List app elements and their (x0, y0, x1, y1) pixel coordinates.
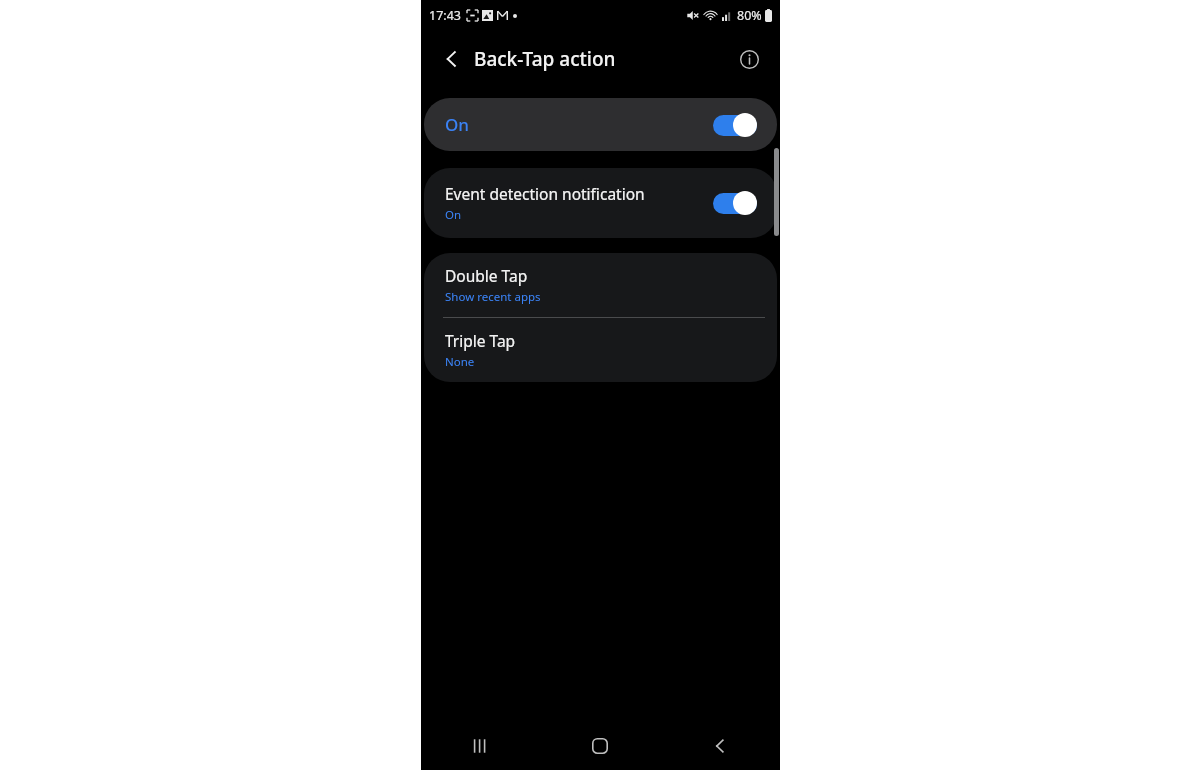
staticText: Show recent apps (445, 289, 541, 305)
button[interactable]: Event detection notification (424, 168, 777, 238)
button[interactable]: Toggle, on (713, 112, 759, 138)
button[interactable]: On (424, 98, 777, 151)
staticText: On (445, 207, 462, 223)
button[interactable]: Triple Tap (424, 318, 777, 382)
staticText: 17:43 (429, 7, 461, 24)
staticText: Event detection notification (445, 183, 645, 204)
button[interactable]: Home (540, 722, 660, 770)
staticText: None (445, 354, 475, 370)
staticText: Triple Tap (445, 330, 516, 351)
staticText: On (445, 113, 469, 136)
staticText: Back-Tap action (474, 46, 616, 72)
button[interactable]: About this feature (732, 42, 766, 76)
button[interactable]: Recent apps (421, 722, 540, 770)
button[interactable]: Toggle, on (713, 190, 759, 216)
button[interactable]: Navigate up (435, 42, 469, 76)
button[interactable]: Double Tap (424, 253, 777, 317)
button[interactable]: Back (660, 722, 780, 770)
staticText: Double Tap (445, 265, 528, 286)
staticText: 80% (737, 7, 762, 24)
